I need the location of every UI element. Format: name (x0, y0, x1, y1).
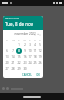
staticText: SELECT DATE (5, 17, 19, 20)
button[interactable]: 24 (27, 60, 32, 66)
button[interactable]: Previous month (33, 32, 37, 36)
staticText: T (29, 38, 31, 41)
staticText: 22 (17, 61, 21, 65)
staticText: 3 (29, 43, 31, 47)
button[interactable]: 17 (27, 54, 32, 60)
staticText: 10 (28, 49, 32, 53)
staticText: F (34, 38, 36, 41)
staticText: 20 (5, 61, 9, 65)
button[interactable]: 28 (10, 66, 16, 72)
staticText: 7 (12, 49, 14, 53)
staticText: ▾ (37, 33, 39, 36)
staticText: november 2022 (14, 32, 36, 36)
button[interactable]: 29 (16, 66, 22, 72)
button[interactable]: 25 (32, 60, 37, 66)
staticText: W (23, 38, 26, 41)
button[interactable]: Next month (38, 32, 42, 36)
button[interactable]: 12 (37, 48, 42, 54)
button[interactable]: 8 (16, 48, 22, 54)
button[interactable]: 30 (22, 66, 27, 72)
staticText: 29 (17, 67, 21, 71)
button[interactable]: 20 (4, 60, 10, 66)
button[interactable]: 6 (4, 48, 10, 54)
staticText: 25 (33, 61, 37, 65)
staticText: 18 (33, 55, 37, 59)
button[interactable]: 2 (22, 42, 27, 48)
button[interactable]: 18 (32, 54, 37, 60)
staticText: 9 (24, 49, 26, 53)
staticText: 26 (38, 61, 42, 65)
staticText: CANCEL (22, 73, 32, 77)
button[interactable]: 23 (22, 60, 27, 66)
staticText: 5 (39, 43, 41, 47)
staticText: 21 (11, 61, 15, 65)
staticText: 15 (17, 55, 21, 59)
staticText: 12 (38, 49, 42, 53)
staticText: 19 (38, 55, 42, 59)
staticText: 11 (33, 49, 37, 53)
button[interactable]: 5 (37, 42, 42, 48)
staticText: › (39, 32, 41, 36)
staticText: T (18, 38, 20, 41)
staticText: OK (36, 73, 40, 77)
button[interactable]: 13 (4, 54, 10, 60)
staticText: 23 (23, 61, 27, 65)
button[interactable]: 14 (10, 54, 16, 60)
staticText: Tue, 8 de nov (5, 21, 33, 27)
staticText: 4 (34, 43, 36, 47)
staticText: 16 (23, 55, 27, 59)
staticText: 24 (28, 61, 32, 65)
staticText: 27 (5, 67, 9, 71)
staticText: S (6, 38, 8, 41)
staticText: M (12, 38, 15, 41)
button[interactable]: 27 (4, 66, 10, 72)
button[interactable]: 26 (37, 60, 42, 66)
button[interactable]: 15 (16, 54, 22, 60)
staticText: ‹ (34, 32, 36, 36)
staticText: 17 (28, 55, 32, 59)
staticText: S (39, 38, 41, 41)
button[interactable]: 16 (22, 54, 27, 60)
button[interactable]: 9 (22, 48, 27, 54)
staticText: 13 (5, 55, 9, 59)
button[interactable]: 21 (10, 60, 16, 66)
button[interactable]: 3 (27, 42, 32, 48)
button[interactable]: 4 (32, 42, 37, 48)
button[interactable]: 10 (27, 48, 32, 54)
button[interactable]: 19 (37, 54, 42, 60)
staticText: 8 (18, 49, 20, 53)
staticText: 28 (11, 67, 15, 71)
button[interactable]: 7 (10, 48, 16, 54)
staticText: 6 (6, 49, 8, 53)
button[interactable]: 11 (32, 48, 37, 54)
staticText: 2 (24, 43, 26, 47)
button[interactable]: OK (34, 72, 42, 78)
button[interactable]: 22 (16, 60, 22, 66)
button[interactable]: CANCEL (20, 72, 34, 78)
staticText: 1 (18, 43, 20, 47)
staticText: 30 (23, 67, 27, 71)
button[interactable]: november 2022 (14, 32, 39, 36)
button[interactable]: 1 (16, 42, 22, 48)
staticText: 14 (11, 55, 15, 59)
